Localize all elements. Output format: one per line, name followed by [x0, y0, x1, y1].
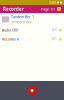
button[interactable]: Audio (30)	[0, 26, 64, 35]
staticText: Tandem Rec 1	[11, 14, 34, 19]
staticText: Recorder	[3, 6, 24, 12]
staticText: converted.wav	[11, 20, 31, 24]
staticText: Page 1/1	[41, 6, 55, 12]
button[interactable]: More	[57, 7, 61, 11]
staticText: 1:07	[49, 0, 56, 5]
staticText: Audio (30)	[2, 28, 18, 32]
button[interactable]: Record	[27, 85, 37, 95]
staticText: Recorder 4	[2, 37, 19, 41]
staticText: 0/1	[52, 37, 57, 41]
staticText: 0/1	[52, 28, 57, 32]
button[interactable]: Recorder 4	[0, 35, 64, 44]
button[interactable]: Tandem Rec 1	[0, 13, 64, 26]
